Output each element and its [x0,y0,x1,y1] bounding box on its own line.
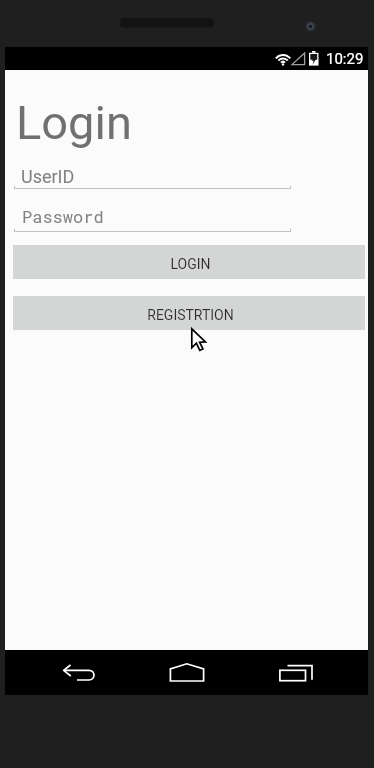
staticText: Password [22,205,104,227]
button[interactable]: UserID [14,166,291,192]
staticText: REGISTRTION [147,307,234,323]
button[interactable]: LOGIN [13,245,365,279]
staticText: Login [16,95,132,150]
button[interactable]: REGISTRTION [13,296,365,330]
staticText: UserID [21,166,75,187]
button[interactable]: Recent apps [276,650,316,695]
other: Battery [309,51,320,67]
button[interactable]: Home [166,650,206,695]
button[interactable]: Password [14,205,291,235]
button[interactable]: Back [59,650,99,695]
staticText: 10:29 [326,50,364,68]
staticText: LOGIN [170,256,211,272]
other: Wi-Fi [275,51,291,66]
